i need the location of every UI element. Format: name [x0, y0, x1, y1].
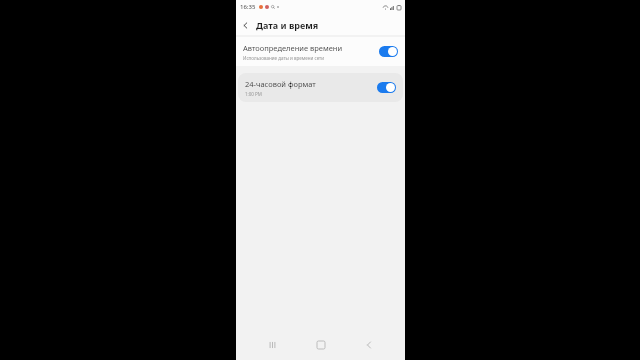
staticText: Использование даты и времени сети: [243, 55, 324, 61]
button[interactable]: Назад: [357, 333, 381, 357]
staticText: 1:00 PM: [245, 91, 262, 97]
button[interactable]: 24-часовой формат: [238, 73, 403, 102]
button[interactable]: Переключатель: [379, 46, 398, 57]
button[interactable]: Переключатель: [377, 82, 396, 93]
staticText: 16:35: [240, 3, 256, 11]
button[interactable]: Последние приложения: [260, 333, 284, 357]
staticText: 24-часовой формат: [245, 79, 316, 89]
staticText: Автоопределение времени: [243, 43, 343, 53]
button[interactable]: Автоопределение времени: [236, 37, 405, 66]
button[interactable]: Главный экран: [309, 333, 333, 357]
staticText: Дата и время: [256, 19, 319, 31]
button[interactable]: Назад: [236, 16, 254, 34]
